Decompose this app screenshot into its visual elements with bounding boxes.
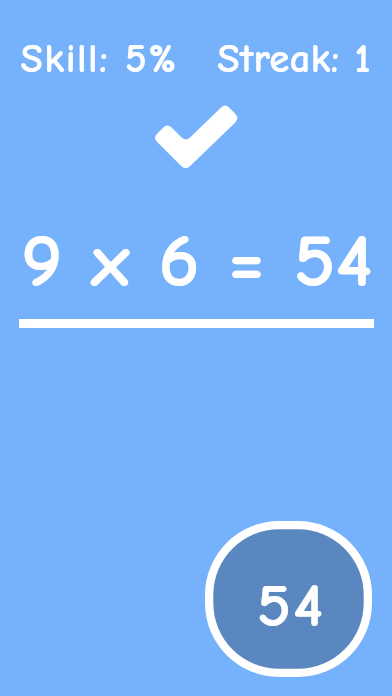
staticText: Skill: 5%	[20, 35, 178, 82]
staticText: 54	[256, 572, 325, 641]
button[interactable]: 54	[205, 521, 372, 677]
staticText: 9 x 6 = 54	[21, 218, 373, 304]
other: Answer correct	[150, 100, 246, 178]
staticText: Streak: 1	[217, 35, 371, 82]
